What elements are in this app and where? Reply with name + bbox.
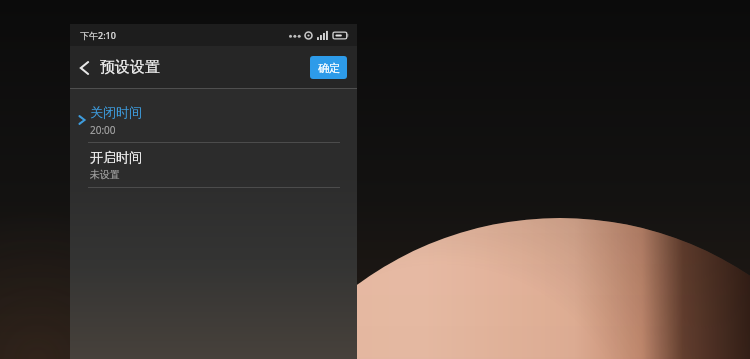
button[interactable]: 开启时间 — [70, 143, 357, 187]
staticText: 开启时间 — [90, 149, 142, 165]
other: Back — [78, 59, 91, 77]
staticText: 关闭时间 — [90, 104, 142, 120]
button[interactable]: 关闭时间 — [70, 98, 357, 142]
staticText: 未设置 — [90, 168, 120, 181]
button[interactable]: Back — [70, 52, 170, 83]
staticText: 预设设置 — [100, 58, 160, 77]
staticText: 确定 — [318, 61, 340, 75]
staticText: 下午2:10 — [80, 29, 116, 41]
staticText: 20:00 — [90, 123, 116, 137]
button[interactable]: 确定 — [310, 56, 347, 79]
